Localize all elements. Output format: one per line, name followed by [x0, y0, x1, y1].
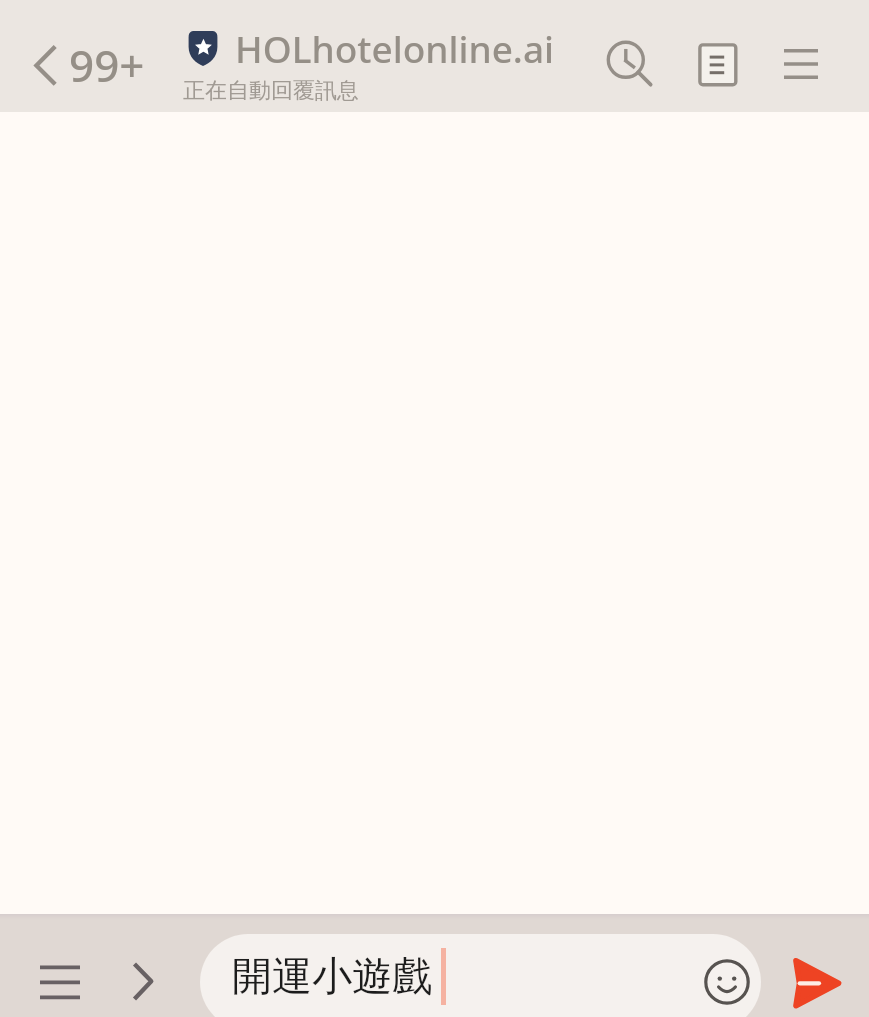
staticText: 99+	[69, 35, 145, 95]
staticText: HOLhotelonline.ai	[235, 23, 555, 73]
button[interactable]: Expand toolbar	[112, 933, 176, 997]
button[interactable]: More options	[24, 933, 96, 1005]
button[interactable]: Search history	[592, 22, 660, 90]
button[interactable]: Menu	[767, 30, 835, 98]
staticText: 開運小遊戲	[232, 951, 432, 1001]
button[interactable]: 開運小遊戲	[200, 934, 761, 1017]
button[interactable]: Emoji	[694, 949, 760, 1015]
button[interactable]: Send	[778, 934, 858, 1014]
button[interactable]: Notes	[684, 30, 752, 98]
staticText: 正在自動回覆訊息	[183, 77, 359, 105]
button[interactable]: 99+	[14, 26, 164, 90]
